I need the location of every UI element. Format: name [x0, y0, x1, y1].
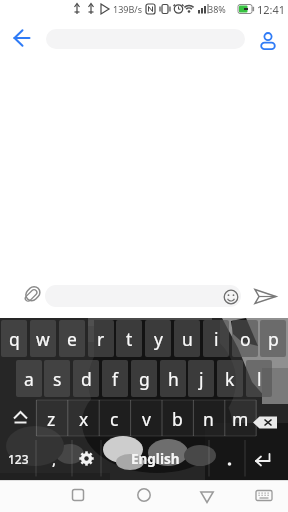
staticText: x — [79, 407, 89, 431]
button[interactable] — [254, 28, 282, 56]
button[interactable]: x — [68, 400, 99, 437]
button[interactable]: d — [73, 360, 99, 397]
staticText: d — [81, 367, 92, 391]
staticText: e — [67, 327, 77, 351]
button[interactable]: n — [193, 400, 224, 437]
button[interactable]: English — [101, 440, 209, 477]
button[interactable]: , — [36, 440, 72, 477]
button[interactable] — [0, 400, 40, 437]
button[interactable] — [243, 400, 288, 437]
staticText: i — [214, 327, 219, 351]
staticText: b — [172, 407, 183, 431]
staticText: v — [142, 407, 151, 431]
staticText: l — [257, 367, 262, 391]
button[interactable] — [6, 22, 40, 56]
button[interactable]: j — [188, 360, 214, 397]
button[interactable] — [245, 440, 288, 477]
button[interactable]: a — [16, 360, 42, 397]
button[interactable]: b — [162, 400, 193, 437]
button[interactable] — [248, 480, 280, 512]
button[interactable] — [72, 440, 101, 477]
button[interactable] — [45, 285, 241, 307]
staticText: 123 — [8, 451, 29, 467]
staticText: h — [168, 367, 179, 391]
staticText: m — [232, 407, 249, 431]
staticText: g — [139, 367, 150, 391]
staticText: w — [36, 327, 50, 351]
button[interactable]: i — [203, 320, 229, 357]
staticText: u — [182, 327, 193, 351]
button[interactable]: g — [131, 360, 157, 397]
button[interactable]: h — [160, 360, 186, 397]
staticText: o — [240, 327, 251, 351]
staticText: 38% — [208, 3, 226, 15]
staticText: , — [52, 449, 57, 469]
button[interactable]: k — [217, 360, 243, 397]
staticText: r — [97, 327, 105, 351]
button[interactable]: l — [246, 360, 272, 397]
button[interactable]: m — [225, 400, 256, 437]
button[interactable] — [250, 283, 280, 313]
button[interactable]: 123 — [0, 440, 36, 477]
staticText: t — [126, 327, 133, 351]
button[interactable]: u — [174, 320, 200, 357]
button[interactable]: q — [1, 320, 27, 357]
staticText: y — [154, 327, 163, 351]
button[interactable]: f — [102, 360, 128, 397]
button[interactable] — [209, 440, 245, 477]
staticText: f — [112, 367, 119, 391]
button[interactable]: w — [30, 320, 56, 357]
button[interactable] — [191, 480, 223, 512]
button[interactable]: p — [260, 320, 286, 357]
staticText: 139B/s — [113, 3, 142, 15]
button[interactable]: s — [44, 360, 70, 397]
staticText: n — [203, 407, 214, 431]
staticText: j — [199, 367, 204, 391]
button[interactable] — [128, 480, 160, 512]
button[interactable]: o — [232, 320, 258, 357]
button[interactable]: z — [36, 400, 67, 437]
staticText: p — [268, 327, 279, 351]
staticText: q — [9, 327, 20, 351]
staticText: s — [53, 367, 62, 391]
button[interactable] — [22, 283, 44, 305]
staticText: k — [225, 367, 235, 391]
staticText: 12:41 — [257, 2, 286, 17]
button[interactable]: y — [145, 320, 171, 357]
staticText: c — [110, 407, 119, 431]
button[interactable]: v — [131, 400, 162, 437]
staticText: English — [131, 450, 180, 468]
staticText: z — [47, 407, 56, 431]
button[interactable] — [62, 480, 94, 512]
button[interactable]: c — [99, 400, 130, 437]
staticText: a — [24, 367, 34, 391]
button[interactable]: e — [59, 320, 85, 357]
button[interactable]: r — [88, 320, 114, 357]
button[interactable]: t — [116, 320, 142, 357]
